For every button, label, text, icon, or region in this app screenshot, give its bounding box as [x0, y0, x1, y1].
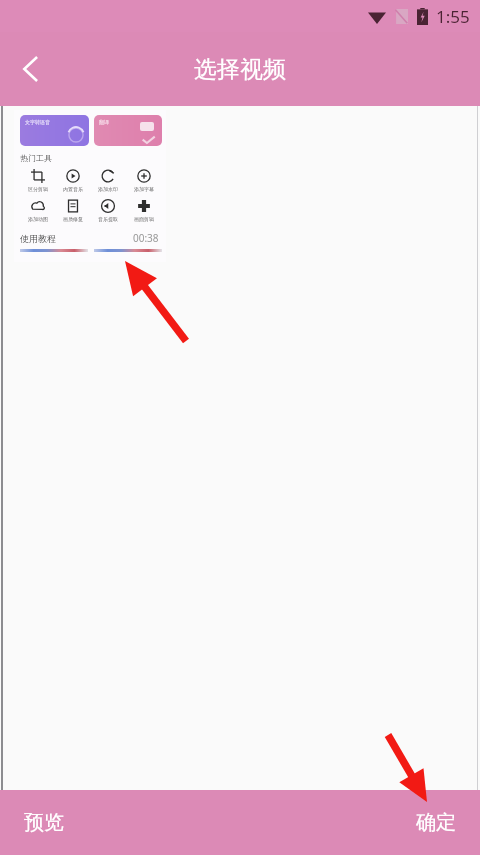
button[interactable]: 文字转语音 [14, 110, 166, 262]
button[interactable]: 预览 [0, 790, 110, 855]
staticText: 画面剪辑 [134, 216, 154, 222]
staticText: 添加动图 [28, 216, 48, 222]
staticText: 1:55 [436, 5, 470, 28]
staticText: 文字转语音 [25, 119, 50, 125]
staticText: 热门工具 [20, 153, 52, 163]
staticText: 内置音乐 [63, 186, 83, 192]
staticText: 预览 [24, 810, 64, 835]
staticText: 00:38 [133, 231, 159, 245]
staticText: 添加水印 [98, 186, 118, 192]
staticText: 选择视频 [194, 55, 286, 84]
staticText: 使用教程 [20, 233, 56, 244]
staticText: 确定 [416, 810, 456, 835]
staticText: 音乐提取 [98, 216, 118, 222]
staticText: 添加字幕 [134, 186, 154, 192]
staticText: 区分剪辑 [28, 186, 48, 192]
staticText: 画质修复 [63, 216, 83, 222]
button[interactable]: 确定 [370, 790, 480, 855]
button[interactable]: Back [8, 46, 54, 92]
staticText: 翻译 [99, 119, 109, 125]
